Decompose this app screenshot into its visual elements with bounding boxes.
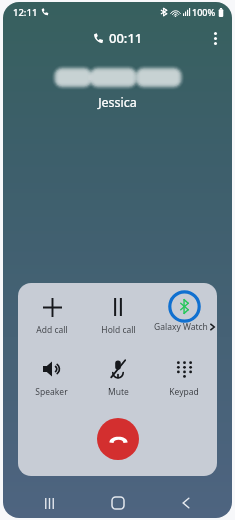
button[interactable]: Mute	[85, 356, 151, 399]
button[interactable]: Back	[164, 489, 208, 517]
staticText: Speaker	[35, 386, 68, 398]
button[interactable]: Home	[96, 489, 140, 517]
staticText: Keypad	[169, 386, 199, 398]
staticText: 100%	[192, 6, 216, 18]
button[interactable]: Speaker	[18, 356, 85, 399]
button[interactable]: Recents	[27, 489, 71, 517]
button[interactable]: Add call	[18, 294, 85, 337]
staticText: Galaxy Watch	[154, 321, 208, 333]
button[interactable]: More options	[202, 25, 228, 51]
button[interactable]: Keypad	[151, 356, 217, 399]
staticText: Hold call	[101, 324, 136, 336]
button[interactable]: End call	[97, 418, 139, 460]
staticText: Jessica	[98, 94, 137, 111]
staticText: 00:11	[109, 29, 143, 47]
button[interactable]: Galaxy Watch audio output	[151, 294, 217, 327]
staticText: 12:11	[13, 6, 38, 19]
button[interactable]: Hold call	[85, 294, 151, 337]
staticText: Mute	[108, 386, 129, 398]
staticText: Add call	[36, 324, 68, 336]
